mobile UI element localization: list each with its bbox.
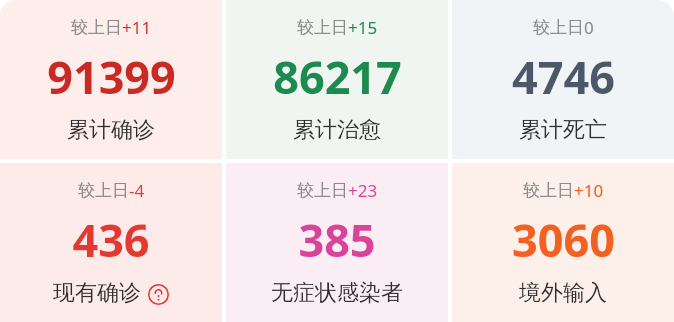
staticText: 0 [584,16,594,39]
staticText: 较上日 [78,180,129,201]
staticText: 较上日 [71,17,122,38]
staticText: 91399 [47,46,176,107]
button[interactable]: 较上日 [0,163,222,322]
button[interactable]: 较上日 [452,0,674,159]
button[interactable]: 较上日 [226,163,448,322]
staticText: 较上日 [297,180,348,201]
staticText: 累计确诊 [67,116,155,144]
staticText: 较上日 [523,180,574,201]
button[interactable]: 较上日 [226,0,448,159]
staticText: 境外输入 [519,279,607,307]
staticText: 4746 [512,46,615,107]
staticText: +10 [574,179,604,202]
staticText: 累计死亡 [519,116,607,144]
button[interactable]: 较上日 [452,163,674,322]
staticText: 较上日 [533,17,584,38]
staticText: 无症状感染者 [271,279,403,307]
staticText: 385 [298,209,376,270]
staticText: +23 [348,179,378,202]
staticText: -4 [129,179,145,202]
staticText: +11 [122,16,152,39]
staticText: 436 [72,209,150,270]
staticText: 较上日 [297,17,348,38]
staticText: 现有确诊 [53,279,141,307]
button[interactable]: 较上日 [0,0,222,159]
staticText: 3060 [512,209,615,270]
staticText: 86217 [273,46,402,107]
button[interactable]: Help, what is 现有确诊 [148,284,169,305]
staticText: 累计治愈 [293,116,381,144]
staticText: +15 [348,16,378,39]
